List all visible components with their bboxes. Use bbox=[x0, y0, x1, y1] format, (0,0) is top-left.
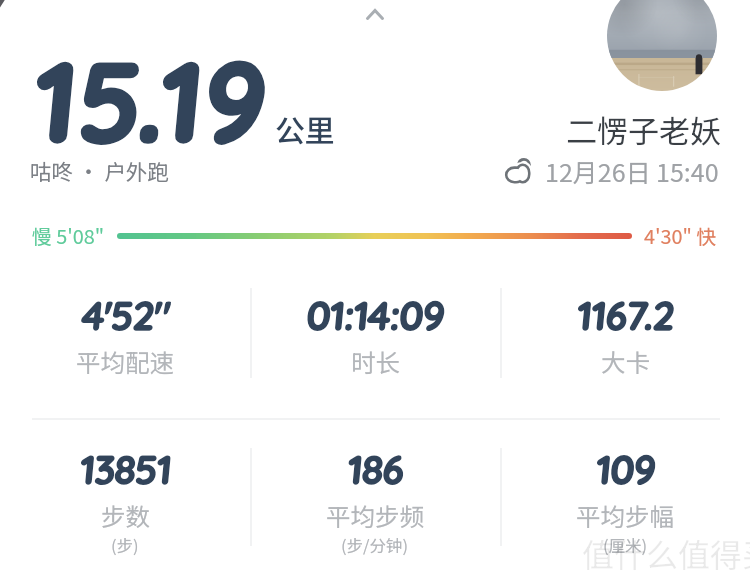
staticText: 12月26日 15:40 bbox=[545, 153, 719, 189]
staticText: 步数 bbox=[101, 498, 150, 533]
staticText: 平均配速 bbox=[76, 344, 174, 379]
staticText: 值什么值得买 bbox=[582, 530, 750, 576]
button[interactable]: 大卡 bbox=[500, 290, 750, 379]
button[interactable]: 平均步频 bbox=[250, 444, 500, 557]
button[interactable]: 步数 bbox=[0, 444, 250, 557]
staticText: 慢 5'08" bbox=[32, 221, 105, 250]
staticText: (厘米) bbox=[603, 533, 648, 557]
staticText: 时长 bbox=[351, 344, 400, 379]
button[interactable]: Collapse bbox=[353, 0, 397, 30]
button[interactable]: 时长 bbox=[250, 290, 500, 379]
staticText: 咕咚 · 户外跑 bbox=[30, 155, 169, 186]
staticText: (步/分钟) bbox=[341, 533, 409, 557]
staticText: 公里 bbox=[275, 107, 335, 150]
staticText: (步) bbox=[111, 533, 139, 557]
staticText: 4'30" 快 bbox=[644, 221, 717, 250]
staticText: 平均步频 bbox=[326, 498, 424, 533]
staticText: 二愣子老妖 bbox=[566, 107, 721, 152]
staticText: 大卡 bbox=[601, 344, 650, 379]
button[interactable]: 平均步幅 bbox=[500, 444, 750, 557]
button[interactable]: 平均配速 bbox=[0, 290, 250, 379]
button[interactable]: Profile photo bbox=[607, 0, 717, 91]
staticText: 平均步幅 bbox=[576, 498, 674, 533]
